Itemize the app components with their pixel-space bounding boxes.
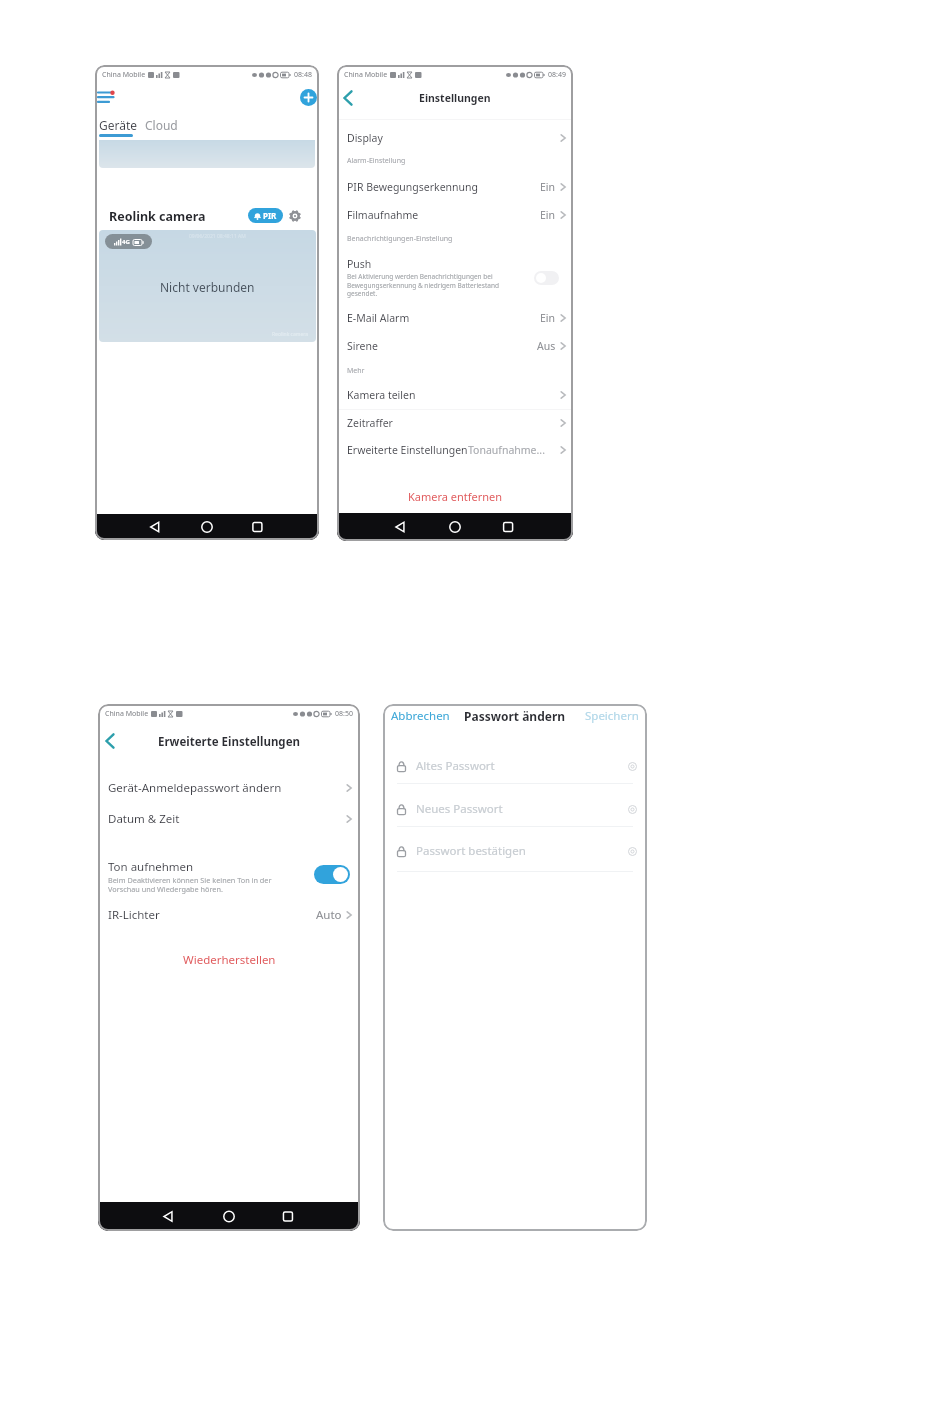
button[interactable] bbox=[534, 271, 559, 285]
button[interactable] bbox=[289, 210, 301, 222]
button[interactable]: Gerät-Anmeldepasswort ändern bbox=[98, 777, 360, 799]
button[interactable]: Speichern bbox=[585, 708, 639, 724]
staticText: Ein bbox=[540, 311, 556, 325]
staticText: Reolink camera bbox=[272, 331, 309, 338]
staticText: Ein bbox=[540, 180, 556, 194]
button[interactable] bbox=[343, 90, 353, 106]
staticText: PIR bbox=[263, 210, 277, 221]
staticText: Altes Passwort bbox=[416, 758, 495, 774]
staticText: 08:48 bbox=[294, 70, 312, 80]
staticText: Gerät-Anmeldepasswort ändern bbox=[108, 780, 282, 796]
button[interactable]: Erweiterte Einstellungen bbox=[337, 439, 573, 461]
staticText: 4G bbox=[122, 238, 130, 246]
staticText: Display bbox=[347, 131, 383, 145]
staticText: Filmaufnahme bbox=[347, 208, 419, 222]
button[interactable] bbox=[314, 865, 350, 884]
button[interactable] bbox=[255, 514, 289, 540]
staticText: IR-Lichter bbox=[108, 907, 160, 923]
staticText: Reolink camera bbox=[109, 208, 206, 225]
staticText: Ein bbox=[540, 208, 556, 222]
staticText: Passwort ändern bbox=[464, 708, 566, 724]
button[interactable] bbox=[628, 762, 637, 771]
staticText: PIR Bewegungserkennung bbox=[347, 180, 479, 194]
staticText: Erweiterte Einstellungen bbox=[347, 443, 468, 457]
staticText: Wiederherstellen bbox=[183, 952, 276, 968]
staticText: Kamera teilen bbox=[347, 388, 416, 402]
staticText: 08:50 bbox=[335, 709, 353, 719]
staticText: Datum & Zeit bbox=[108, 811, 180, 827]
button[interactable] bbox=[138, 1202, 172, 1231]
button[interactable]: Ton aufnehmen bbox=[98, 859, 360, 895]
staticText: Mehr bbox=[347, 366, 365, 376]
staticText: Zeitraffer bbox=[347, 416, 393, 430]
staticText: China Mobile bbox=[105, 709, 149, 719]
button[interactable]: Kamera teilen bbox=[337, 384, 573, 406]
staticText: Beim Deaktivieren können Sie keinen Ton … bbox=[108, 875, 272, 894]
staticText: Benachrichtigungen-Einstellung bbox=[347, 234, 453, 244]
button[interactable] bbox=[286, 1202, 320, 1231]
button[interactable]: Push bbox=[337, 257, 573, 299]
button[interactable]: Zeitraffer bbox=[337, 412, 573, 434]
button[interactable]: Geräte bbox=[99, 117, 138, 133]
button[interactable]: Datum & Zeit bbox=[98, 808, 360, 830]
staticText: 09/06/2021 08:48:11 AM bbox=[189, 233, 246, 240]
button[interactable]: IR-Lichter bbox=[98, 904, 360, 926]
button[interactable]: Sirene bbox=[337, 335, 573, 357]
staticText: Neues Passwort bbox=[416, 801, 503, 817]
staticText: E-Mail Alarm bbox=[347, 311, 410, 325]
button[interactable]: Display bbox=[337, 127, 573, 149]
staticText: Einstellungen bbox=[419, 91, 491, 105]
button[interactable]: Cloud bbox=[145, 117, 178, 133]
button[interactable]: Passwort bestätigen bbox=[383, 841, 647, 861]
button[interactable] bbox=[126, 514, 160, 540]
button[interactable] bbox=[506, 513, 540, 541]
button[interactable]: E-Mail Alarm bbox=[337, 307, 573, 329]
button[interactable] bbox=[190, 514, 224, 540]
staticText: Sirene bbox=[347, 339, 378, 353]
button[interactable] bbox=[212, 1202, 246, 1231]
button[interactable]: Filmaufnahme bbox=[337, 204, 573, 226]
staticText: China Mobile bbox=[344, 70, 388, 80]
staticText: Tonaufnahme... bbox=[468, 443, 545, 457]
staticText: 08:49 bbox=[548, 70, 566, 80]
button[interactable] bbox=[628, 847, 637, 856]
button[interactable] bbox=[300, 89, 317, 106]
button[interactable] bbox=[438, 513, 472, 541]
staticText: Passwort bestätigen bbox=[416, 843, 526, 859]
button[interactable]: Wiederherstellen bbox=[98, 949, 360, 971]
staticText: Kamera entfernen bbox=[408, 489, 503, 504]
staticText: Ton aufnehmen bbox=[108, 859, 194, 875]
button[interactable]: Neues Passwort bbox=[383, 799, 647, 819]
staticText: Push bbox=[347, 257, 372, 271]
staticText: Aus bbox=[537, 339, 556, 353]
button[interactable]: Altes Passwort bbox=[383, 756, 647, 776]
staticText: Bei Aktivierung werden Benachrichtigunge… bbox=[347, 272, 499, 298]
button[interactable] bbox=[628, 805, 637, 814]
button[interactable]: PIR bbox=[248, 208, 283, 223]
button[interactable]: Abbrechen bbox=[391, 708, 450, 724]
button[interactable] bbox=[105, 733, 115, 749]
staticText: Auto bbox=[316, 907, 342, 923]
staticText: Erweiterte Einstellungen bbox=[158, 734, 300, 750]
button[interactable]: PIR Bewegungserkennung bbox=[337, 176, 573, 198]
staticText: Nicht verbunden bbox=[160, 279, 255, 295]
button[interactable] bbox=[98, 91, 115, 104]
button[interactable] bbox=[371, 513, 405, 541]
button[interactable]: 09/06/2021 08:48:11 AM bbox=[99, 230, 316, 342]
staticText: Alarm-Einstellung bbox=[347, 156, 406, 166]
button[interactable]: Kamera entfernen bbox=[337, 485, 573, 507]
staticText: China Mobile bbox=[102, 70, 146, 80]
